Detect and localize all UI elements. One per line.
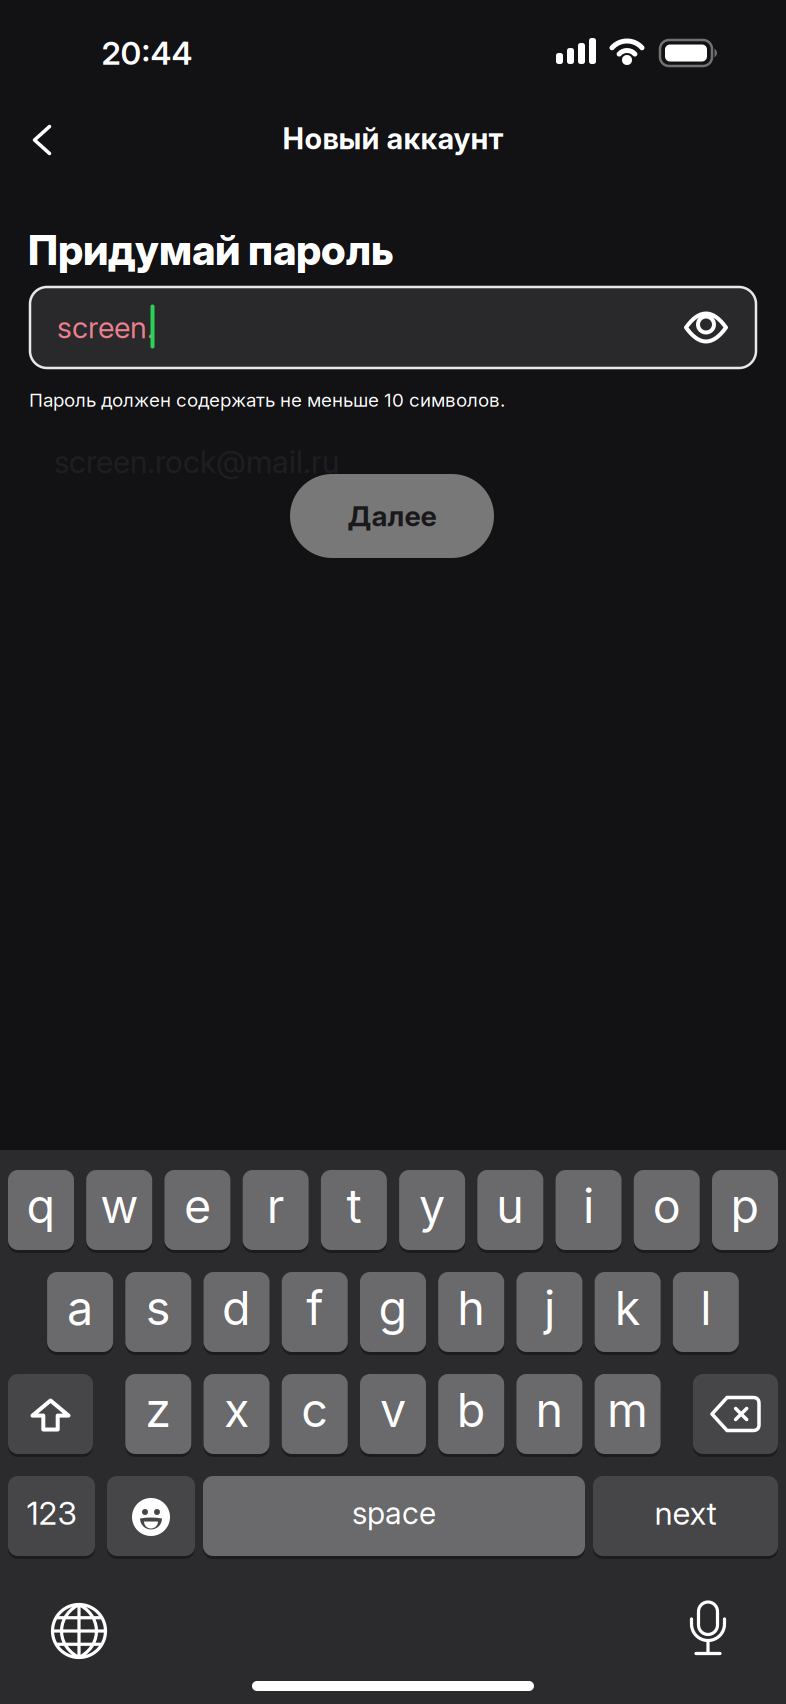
button[interactable]: m (595, 1374, 661, 1456)
button[interactable]: s (125, 1272, 191, 1354)
staticText: j (544, 1280, 555, 1336)
staticText: r (267, 1178, 285, 1234)
button[interactable]: next (593, 1476, 778, 1558)
button[interactable]: t (321, 1170, 387, 1252)
button[interactable]: f (282, 1272, 348, 1354)
staticText: u (496, 1178, 524, 1234)
button[interactable]: i (555, 1170, 621, 1252)
staticText: p (730, 1178, 759, 1234)
staticText: b (457, 1382, 486, 1438)
button[interactable]: Назад (20, 112, 63, 167)
button[interactable]: e (164, 1170, 230, 1252)
button[interactable]: k (595, 1272, 661, 1354)
staticText: t (346, 1178, 361, 1234)
staticText: x (224, 1382, 249, 1438)
button[interactable]: v (360, 1374, 426, 1456)
staticText: e (184, 1178, 211, 1234)
button[interactable]: o (634, 1170, 700, 1252)
staticText: o (653, 1178, 681, 1234)
button[interactable]: p (712, 1170, 778, 1252)
button[interactable]: a (47, 1272, 113, 1354)
button[interactable]: l (673, 1272, 739, 1354)
staticText: Новый аккаунт (282, 121, 503, 156)
staticText: f (306, 1280, 323, 1336)
button[interactable]: u (477, 1170, 543, 1252)
staticText: s (146, 1280, 171, 1336)
button[interactable]: z (125, 1374, 191, 1456)
staticText: space (352, 1494, 436, 1531)
button[interactable]: w (86, 1170, 152, 1252)
staticText: v (380, 1382, 406, 1438)
staticText: Далее (347, 499, 436, 533)
staticText: screen. (57, 310, 155, 345)
staticText: y (419, 1178, 445, 1234)
staticText: m (607, 1382, 648, 1438)
button[interactable]: Emoji (107, 1476, 195, 1558)
staticText: 20:44 (101, 34, 192, 72)
button[interactable]: Shift (8, 1374, 93, 1456)
staticText: z (145, 1382, 171, 1438)
staticText: Придумай пароль (28, 225, 394, 275)
button[interactable]: d (203, 1272, 269, 1354)
staticText: k (615, 1280, 641, 1336)
button[interactable]: x (203, 1374, 269, 1456)
staticText: g (378, 1280, 407, 1336)
button[interactable]: c (282, 1374, 348, 1456)
staticText: Пароль должен содержать не меньше 10 сим… (29, 389, 505, 411)
staticText: 123 (26, 1494, 76, 1532)
staticText: l (700, 1280, 711, 1336)
staticText: w (100, 1178, 138, 1234)
staticText: q (26, 1178, 55, 1234)
button[interactable]: n (516, 1374, 582, 1456)
staticText: h (457, 1280, 485, 1336)
button[interactable]: Далее (290, 474, 494, 558)
button[interactable]: q (8, 1170, 74, 1252)
staticText: d (222, 1280, 251, 1336)
staticText: i (583, 1178, 594, 1234)
staticText: next (654, 1494, 716, 1532)
button[interactable]: Delete (693, 1374, 778, 1456)
button[interactable]: space (203, 1476, 585, 1558)
button[interactable]: Показать пароль (676, 303, 736, 351)
button[interactable]: Next keyboard (44, 1596, 113, 1665)
button[interactable]: 123 (8, 1476, 95, 1558)
button[interactable]: g (360, 1272, 426, 1354)
button[interactable]: y (399, 1170, 465, 1252)
button[interactable]: h (438, 1272, 504, 1354)
staticText: screen.rock@mail.ru (54, 443, 339, 480)
button[interactable]: b (438, 1374, 504, 1456)
button[interactable]: Dictation (682, 1592, 734, 1663)
staticText: n (535, 1382, 563, 1438)
button[interactable]: j (516, 1272, 582, 1354)
staticText: c (301, 1382, 328, 1438)
button[interactable]: r (243, 1170, 309, 1252)
button[interactable]: screen. (30, 287, 756, 368)
staticText: a (67, 1280, 93, 1336)
